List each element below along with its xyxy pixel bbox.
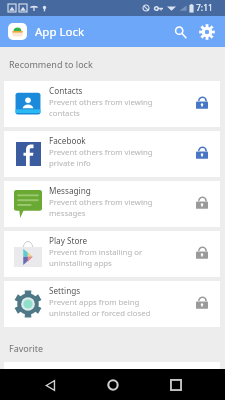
button[interactable]: Facebook [4, 131, 220, 177]
button[interactable]: Unlock Contacts [190, 91, 214, 115]
button[interactable]: Lock Settings [190, 291, 214, 315]
button[interactable]: Settings [194, 19, 220, 45]
button[interactable]: Lock Messaging [190, 191, 214, 215]
staticText: 7:11 [196, 2, 213, 14]
staticText: Facebook [49, 135, 86, 146]
staticText: App Lock [35, 24, 85, 40]
button[interactable]: Contacts [4, 81, 220, 127]
staticText: Contacts [49, 85, 83, 96]
button[interactable]: Settings [4, 281, 220, 327]
staticText: Play Store [49, 235, 88, 246]
staticText: Prevent others from viewing contacts [49, 97, 153, 119]
staticText: Prevent others from viewing private info [49, 147, 153, 169]
button[interactable]: Play Store [4, 231, 220, 277]
button[interactable]: Unlock Facebook [190, 141, 214, 165]
staticText: Recommend to lock [9, 58, 93, 70]
button[interactable]: Messaging [4, 181, 220, 227]
button[interactable]: Lock Play Store [190, 241, 214, 265]
staticText: Prevent others from viewing messages [49, 197, 153, 219]
staticText: Prevent from installing or uninstalling … [49, 247, 143, 269]
staticText: Settings [49, 285, 81, 296]
button[interactable]: Home [98, 370, 128, 400]
button[interactable]: Back [35, 370, 65, 400]
staticText: Favorite [9, 342, 44, 354]
button[interactable]: Search [167, 19, 193, 45]
staticText: Prevent apps from being uninstalled or f… [49, 297, 151, 319]
staticText: Messaging [49, 185, 91, 196]
button[interactable]: Recents [161, 370, 191, 400]
